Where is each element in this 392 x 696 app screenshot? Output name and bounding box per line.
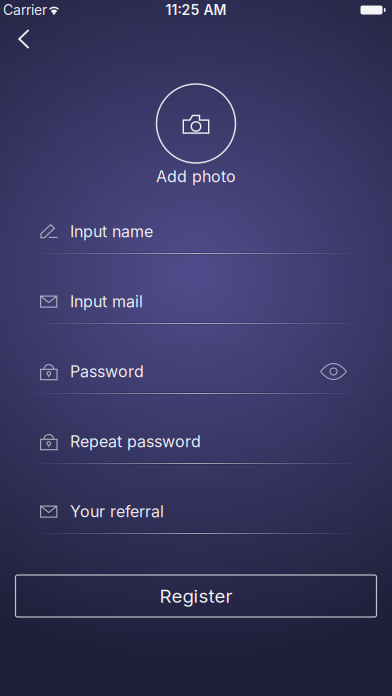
staticText: Your referral bbox=[70, 502, 164, 521]
staticText: 11:25 AM bbox=[165, 1, 226, 18]
button[interactable]: Add photo bbox=[126, 84, 266, 190]
staticText: Password bbox=[70, 362, 144, 381]
button[interactable]: Input mail bbox=[0, 270, 392, 340]
button[interactable]: Password bbox=[0, 340, 392, 410]
button[interactable]: Your referral bbox=[0, 480, 392, 550]
staticText: Input mail bbox=[70, 292, 143, 311]
button[interactable]: Register bbox=[15, 575, 376, 617]
button[interactable]: Back bbox=[2, 22, 46, 56]
staticText: Carrier bbox=[3, 1, 47, 18]
staticText: Add photo bbox=[156, 167, 236, 186]
staticText: Repeat password bbox=[70, 432, 201, 451]
button[interactable]: Repeat password bbox=[0, 410, 392, 480]
staticText: Register bbox=[159, 585, 232, 607]
button[interactable]: Input name bbox=[0, 200, 392, 270]
staticText: Input name bbox=[70, 222, 153, 241]
